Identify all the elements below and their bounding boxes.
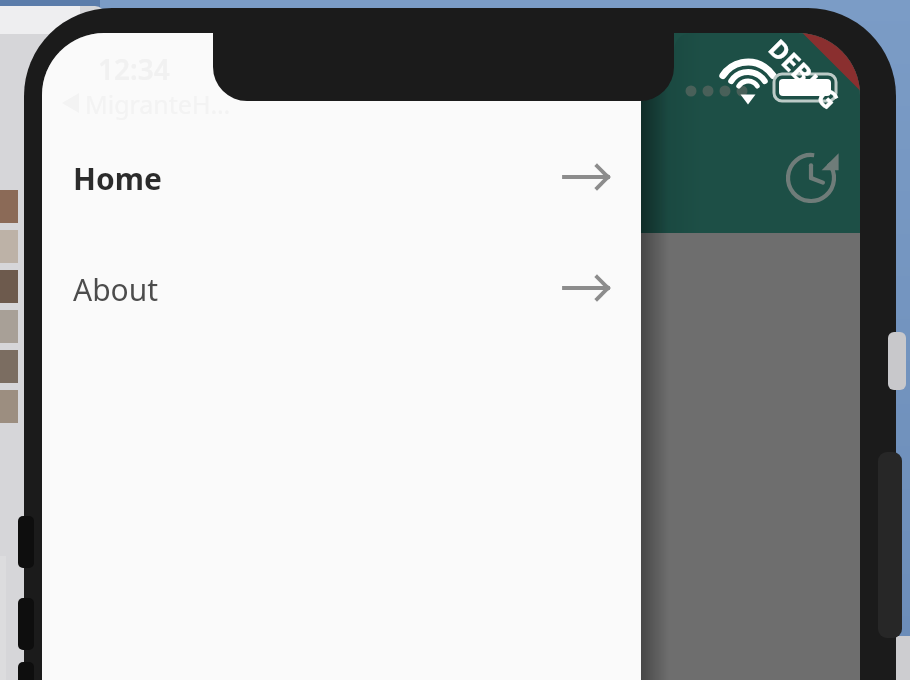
button[interactable] (42, 140, 641, 214)
button[interactable]: History (781, 148, 841, 208)
button[interactable] (42, 251, 641, 325)
button[interactable]: Close navigation drawer (641, 33, 860, 680)
